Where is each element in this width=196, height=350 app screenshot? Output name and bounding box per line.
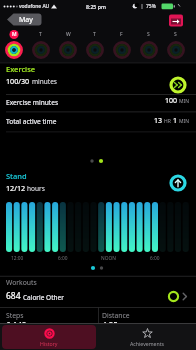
staticText: 75% <box>146 3 156 10</box>
button[interactable] <box>98 308 196 323</box>
staticText: W <box>66 31 71 38</box>
button[interactable] <box>136 28 162 61</box>
staticText: 13 <box>154 116 164 126</box>
staticText: S <box>174 31 177 38</box>
staticText: Distance <box>102 311 130 320</box>
button[interactable] <box>1 28 27 61</box>
button[interactable] <box>82 28 108 61</box>
staticText: Steps <box>6 311 24 320</box>
staticText: Exercise minutes <box>6 98 59 107</box>
button[interactable] <box>0 112 196 132</box>
staticText: 12/12 <box>6 183 27 193</box>
button[interactable] <box>28 28 54 61</box>
button[interactable] <box>0 168 196 200</box>
button[interactable] <box>0 276 196 307</box>
staticText: May <box>19 15 33 25</box>
button[interactable]: History <box>2 325 96 349</box>
staticText: S <box>147 31 150 38</box>
staticText: HR <box>164 118 173 125</box>
staticText: 6:00 <box>58 255 68 262</box>
button[interactable]: Achievements <box>98 324 196 350</box>
staticText: Achievements <box>130 340 165 347</box>
staticText: minutes <box>32 77 57 86</box>
staticText: NOON <box>101 255 116 262</box>
staticText: F <box>120 31 123 38</box>
staticText: vodafone AU <box>19 3 50 10</box>
staticText: T <box>39 31 42 38</box>
button[interactable] <box>109 28 135 61</box>
staticText: MIN <box>179 98 190 105</box>
staticText: 6,148 <box>6 320 27 331</box>
button[interactable] <box>163 28 189 61</box>
staticText: 100 <box>165 96 179 106</box>
staticText: 100/30 <box>6 76 32 86</box>
staticText: Stand <box>6 171 27 181</box>
staticText: 6:00 <box>150 255 160 262</box>
staticText: M <box>12 31 17 38</box>
staticText: 12:00 <box>11 255 24 262</box>
staticText: hours <box>27 184 45 193</box>
staticText: MIN <box>179 118 190 125</box>
staticText: 8:25 pm <box>86 3 106 10</box>
staticText: 1 <box>173 116 179 126</box>
staticText: Total active time <box>6 117 57 126</box>
button[interactable] <box>0 308 98 323</box>
staticText: Calorie Other <box>23 293 64 302</box>
staticText: Workouts <box>6 278 37 287</box>
button[interactable] <box>167 13 185 28</box>
staticText: History <box>40 340 58 347</box>
button[interactable] <box>0 95 196 112</box>
staticText: 4.25 <box>102 320 118 331</box>
staticText: Exercise <box>6 64 36 74</box>
button[interactable] <box>0 63 196 94</box>
button[interactable] <box>55 28 81 61</box>
staticText: T <box>93 31 96 38</box>
staticText: 684 <box>6 290 23 302</box>
button[interactable] <box>6 13 42 26</box>
